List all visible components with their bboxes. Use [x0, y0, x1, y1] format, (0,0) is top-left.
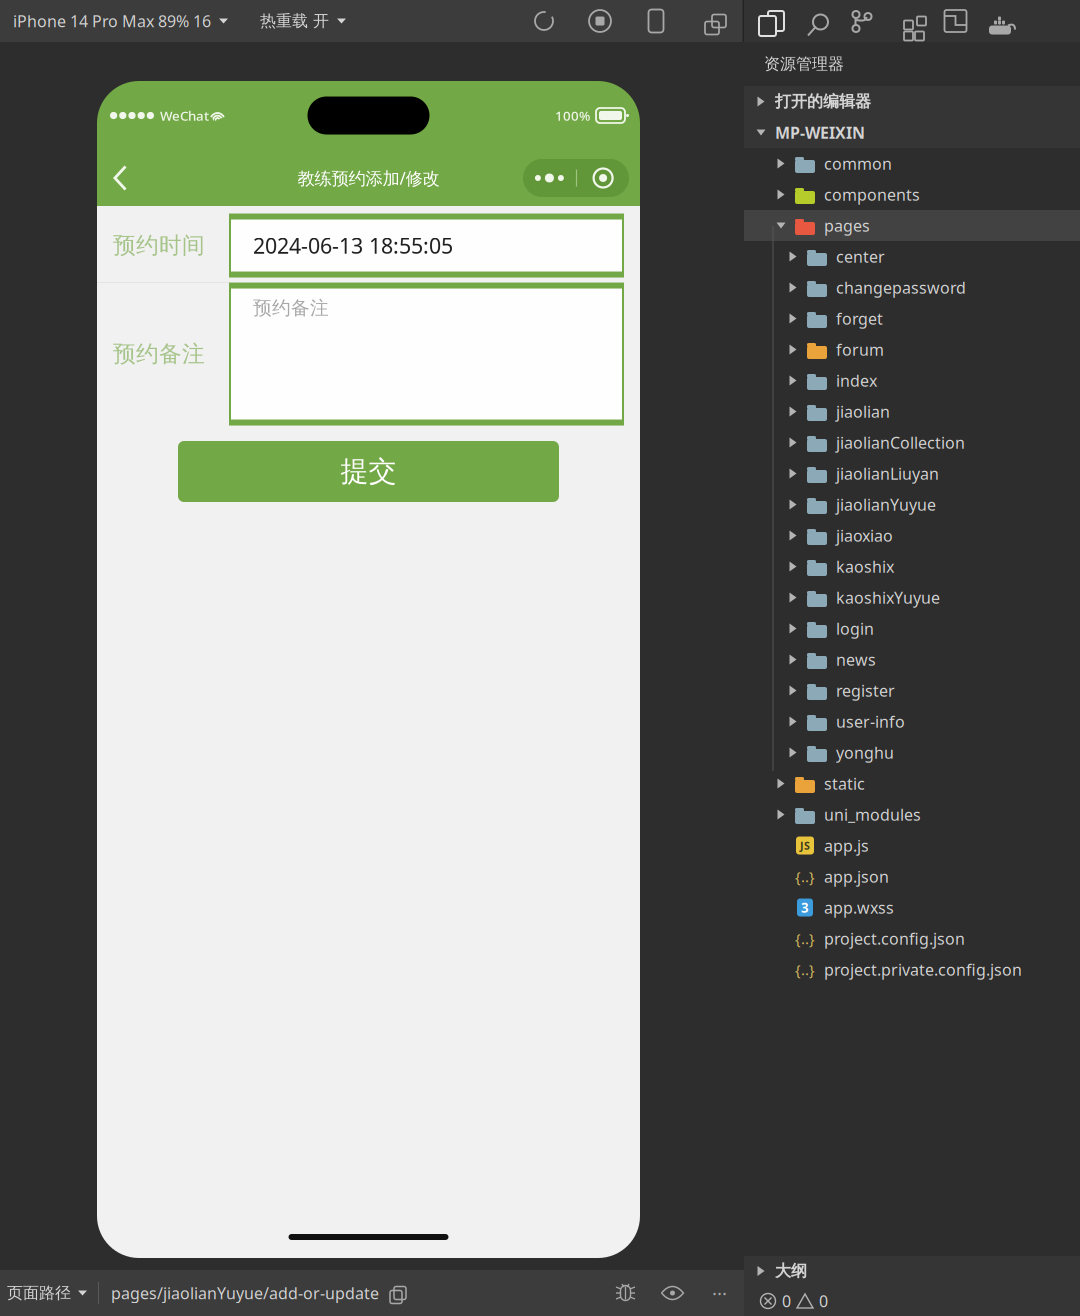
staticText: project.private.config.json	[824, 959, 1022, 980]
button[interactable]: Layout	[932, 0, 979, 42]
staticText: 预约时间	[113, 232, 205, 259]
staticText: 大纲	[775, 1261, 807, 1281]
staticText: 页面路径	[7, 1283, 71, 1303]
staticText: 热重载 开	[260, 11, 329, 31]
button[interactable]: kaoshix	[744, 551, 1080, 582]
staticText: app.wxss	[824, 897, 894, 918]
staticText: jiaoxiao	[836, 525, 893, 546]
staticText: jiaolian	[836, 401, 890, 422]
button[interactable]: kaoshixYuyue	[744, 582, 1080, 613]
button[interactable]: Extensions	[885, 0, 932, 42]
button[interactable]: center	[744, 241, 1080, 272]
staticText: uni_modules	[824, 804, 921, 825]
staticText: static	[824, 773, 865, 794]
staticText: project.config.json	[824, 928, 965, 949]
staticText: 教练预约添加/修改	[297, 166, 439, 189]
staticText: 打开的编辑器	[775, 92, 871, 111]
button[interactable]: Close	[577, 159, 629, 197]
staticText: user-info	[836, 711, 905, 732]
staticText: forum	[836, 339, 884, 360]
button[interactable]: forum	[744, 334, 1080, 365]
button[interactable]: jiaoxiao	[744, 520, 1080, 551]
staticText: login	[836, 618, 874, 639]
button[interactable]: user-info	[744, 706, 1080, 737]
button[interactable]: jiaolianYuyue	[744, 489, 1080, 520]
staticText: jiaolianCollection	[836, 432, 965, 453]
staticText: iPhone 14 Pro Max 89% 16	[13, 10, 211, 32]
button[interactable]: 3	[744, 892, 1080, 923]
button[interactable]: Docker	[979, 0, 1026, 42]
staticText: pages/jiaolianYuyue/add-or-update	[111, 1282, 379, 1304]
staticText: 0	[819, 1290, 828, 1312]
staticText: forget	[836, 308, 883, 329]
staticText: 2024-06-13 18:55:05	[253, 231, 453, 260]
button[interactable]: Source control	[838, 0, 885, 42]
staticText: index	[836, 370, 877, 391]
button[interactable]: 提交	[178, 441, 559, 502]
button[interactable]: jiaolianCollection	[744, 427, 1080, 458]
button[interactable]: components	[744, 179, 1080, 210]
button[interactable]: JS	[744, 830, 1080, 861]
button[interactable]: More options	[696, 1275, 743, 1311]
button[interactable]: Refresh	[516, 0, 572, 42]
staticText: common	[824, 153, 892, 174]
button[interactable]: {..}	[744, 861, 1080, 892]
button[interactable]: forget	[744, 303, 1080, 334]
button[interactable]: Stop	[572, 0, 628, 42]
staticText: WeChat	[160, 107, 209, 124]
staticText: jiaolianYuyue	[836, 494, 936, 515]
staticText: 预约备注	[113, 340, 205, 368]
staticText: news	[836, 649, 876, 670]
staticText: jiaolianLiuyan	[836, 463, 939, 484]
button[interactable]: register	[744, 675, 1080, 706]
button[interactable]: 页面路径	[0, 1270, 89, 1316]
button[interactable]: iPhone 14 Pro Max 89% 16	[0, 0, 236, 42]
button[interactable]: {..}	[744, 954, 1080, 985]
button[interactable]: Search	[791, 0, 838, 42]
button[interactable]: news	[744, 644, 1080, 675]
staticText: 100%	[555, 107, 590, 124]
button[interactable]: jiaolianLiuyan	[744, 458, 1080, 489]
button[interactable]: index	[744, 365, 1080, 396]
staticText: ···	[712, 1281, 727, 1305]
button[interactable]: 热重载 开	[236, 0, 354, 42]
button[interactable]: MP-WEIXIN	[744, 117, 1080, 148]
staticText: {..}	[795, 960, 815, 979]
button[interactable]: jiaolian	[744, 396, 1080, 427]
button[interactable]: {..}	[744, 923, 1080, 954]
button[interactable]: static	[744, 768, 1080, 799]
button[interactable]: More	[523, 159, 576, 197]
staticText: pages	[824, 215, 870, 236]
staticText: app.js	[824, 835, 869, 856]
button[interactable]: changepassword	[744, 272, 1080, 303]
button[interactable]: yonghu	[744, 737, 1080, 768]
button[interactable]: pages	[744, 210, 1080, 241]
staticText: register	[836, 680, 895, 701]
staticText: 提交	[340, 454, 396, 489]
button[interactable]: Windows	[684, 0, 740, 42]
staticText: 预约备注	[253, 296, 329, 319]
staticText: app.json	[824, 866, 889, 887]
staticText: 资源管理器	[764, 54, 844, 74]
staticText: components	[824, 184, 920, 205]
staticText: kaoshix	[836, 556, 894, 577]
staticText: JS	[800, 838, 810, 853]
button[interactable]: 大纲	[744, 1256, 1080, 1286]
staticText: center	[836, 246, 885, 267]
staticText: 0	[782, 1290, 791, 1312]
button[interactable]: common	[744, 148, 1080, 179]
button[interactable]: Back	[97, 150, 143, 206]
button[interactable]: uni_modules	[744, 799, 1080, 830]
button[interactable]: Copy path	[379, 1278, 413, 1308]
button[interactable]: Explorer	[744, 0, 791, 42]
button[interactable]: Simulator	[628, 0, 684, 42]
button[interactable]: 打开的编辑器	[744, 86, 1080, 117]
button[interactable]: Preview	[649, 1275, 696, 1311]
staticText: yonghu	[836, 742, 894, 763]
button[interactable]: login	[744, 613, 1080, 644]
staticText: {..}	[795, 929, 815, 948]
button[interactable]: Debug	[602, 1275, 649, 1311]
staticText: MP-WEIXIN	[775, 122, 865, 143]
staticText: kaoshixYuyue	[836, 587, 940, 608]
staticText: {..}	[795, 867, 815, 886]
